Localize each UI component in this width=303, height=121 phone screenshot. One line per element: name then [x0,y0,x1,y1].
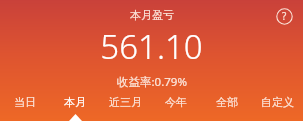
staticText: 561.10 [100,24,203,69]
staticText: 全部 [216,95,238,109]
button[interactable]: 全部 [201,91,252,121]
staticText: 自定义 [261,95,294,109]
staticText: ? [282,9,287,23]
button[interactable]: 今年 [150,91,201,121]
staticText: 近三月 [109,95,142,109]
button[interactable]: 当日 [0,91,50,121]
button[interactable]: 自定义 [252,91,303,121]
staticText: 今年 [165,95,187,109]
staticText: 当日 [14,95,36,109]
staticText: 本月 [64,95,86,109]
staticText: 收益率:0.79% [117,74,187,90]
button[interactable]: 近三月 [100,91,150,121]
staticText: 本月盈亏 [130,8,174,22]
button[interactable]: 帮助 [272,4,296,28]
button[interactable]: 本月 [50,91,100,121]
